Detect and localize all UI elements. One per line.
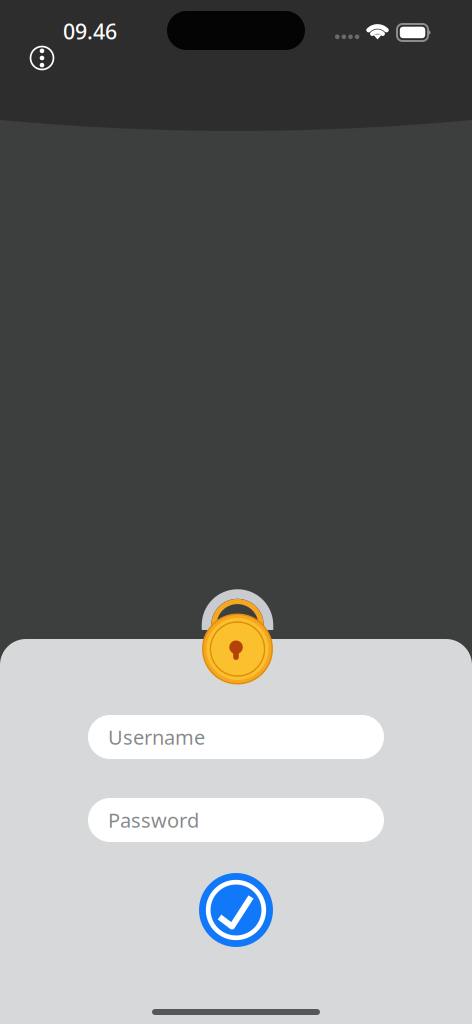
staticText: Password [108,807,199,833]
button[interactable]: Username [88,715,384,759]
button[interactable]: Password [88,798,384,842]
button[interactable]: Sign In [199,873,273,947]
staticText: Username [108,724,205,750]
staticText: 09.46 [63,17,117,45]
